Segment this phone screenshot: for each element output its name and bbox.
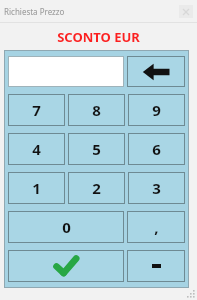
staticText: 3 — [152, 178, 161, 198]
staticText: 7 — [32, 100, 41, 120]
staticText: SCONTO EUR — [57, 28, 140, 46]
staticText: 5 — [92, 139, 101, 159]
button[interactable]: 5 — [68, 133, 125, 165]
button[interactable]: 0 — [8, 211, 124, 243]
staticText: 1 — [32, 178, 41, 198]
staticText: Richiesta Prezzo — [4, 6, 65, 17]
button[interactable]: Confirm — [8, 250, 124, 282]
button[interactable]: Close — [179, 5, 193, 18]
button[interactable]: Minus — [127, 250, 185, 282]
button[interactable] — [8, 56, 124, 87]
staticText: 9 — [152, 100, 161, 120]
button[interactable]: 3 — [128, 172, 185, 204]
staticText: 4 — [32, 139, 41, 159]
button[interactable]: 2 — [68, 172, 125, 204]
button[interactable]: 7 — [8, 94, 65, 126]
button[interactable]: 8 — [68, 94, 125, 126]
staticText: 8 — [92, 100, 101, 120]
staticText: 2 — [92, 178, 101, 198]
button[interactable]: 6 — [128, 133, 185, 165]
button[interactable]: 9 — [128, 94, 185, 126]
button[interactable]: 1 — [8, 172, 65, 204]
button[interactable]: Backspace — [127, 56, 185, 87]
staticText: , — [154, 217, 159, 237]
button[interactable]: 4 — [8, 133, 65, 165]
button[interactable]: , — [127, 211, 185, 243]
staticText: 0 — [62, 217, 71, 237]
staticText: 6 — [152, 139, 161, 159]
